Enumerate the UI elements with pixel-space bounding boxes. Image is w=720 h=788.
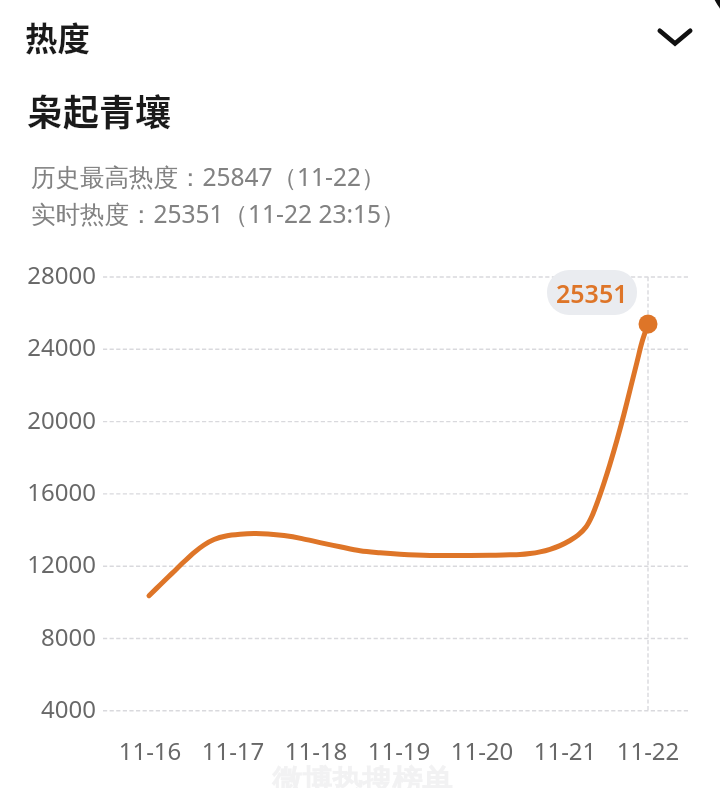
staticText: 16000	[12, 475, 96, 508]
staticText: 11-22	[603, 734, 693, 767]
staticText: 8000	[12, 620, 96, 653]
staticText: 微博热搜榜单	[272, 762, 452, 788]
staticText: 4000	[12, 692, 96, 725]
button[interactable]: 25351	[547, 270, 637, 315]
staticText: 11-17	[188, 734, 278, 767]
staticText: 11-21	[520, 734, 610, 767]
staticText: 11-19	[354, 734, 444, 767]
button[interactable]: Collapse	[648, 0, 701, 72]
staticText: 12000	[12, 547, 96, 580]
staticText: 11-16	[105, 734, 195, 767]
staticText: 实时热度：25351（11-22 23:15）	[31, 197, 406, 230]
staticText: 28000	[12, 258, 96, 291]
staticText: 11-18	[271, 734, 361, 767]
staticText: 20000	[12, 403, 96, 436]
staticText: 25351	[556, 276, 628, 310]
staticText: 历史最高热度：25847（11-22）	[31, 160, 386, 193]
staticText: 热度	[25, 13, 91, 60]
staticText: 枭起青壤	[27, 84, 172, 136]
staticText: 24000	[12, 330, 96, 363]
staticText: 11-20	[437, 734, 527, 767]
